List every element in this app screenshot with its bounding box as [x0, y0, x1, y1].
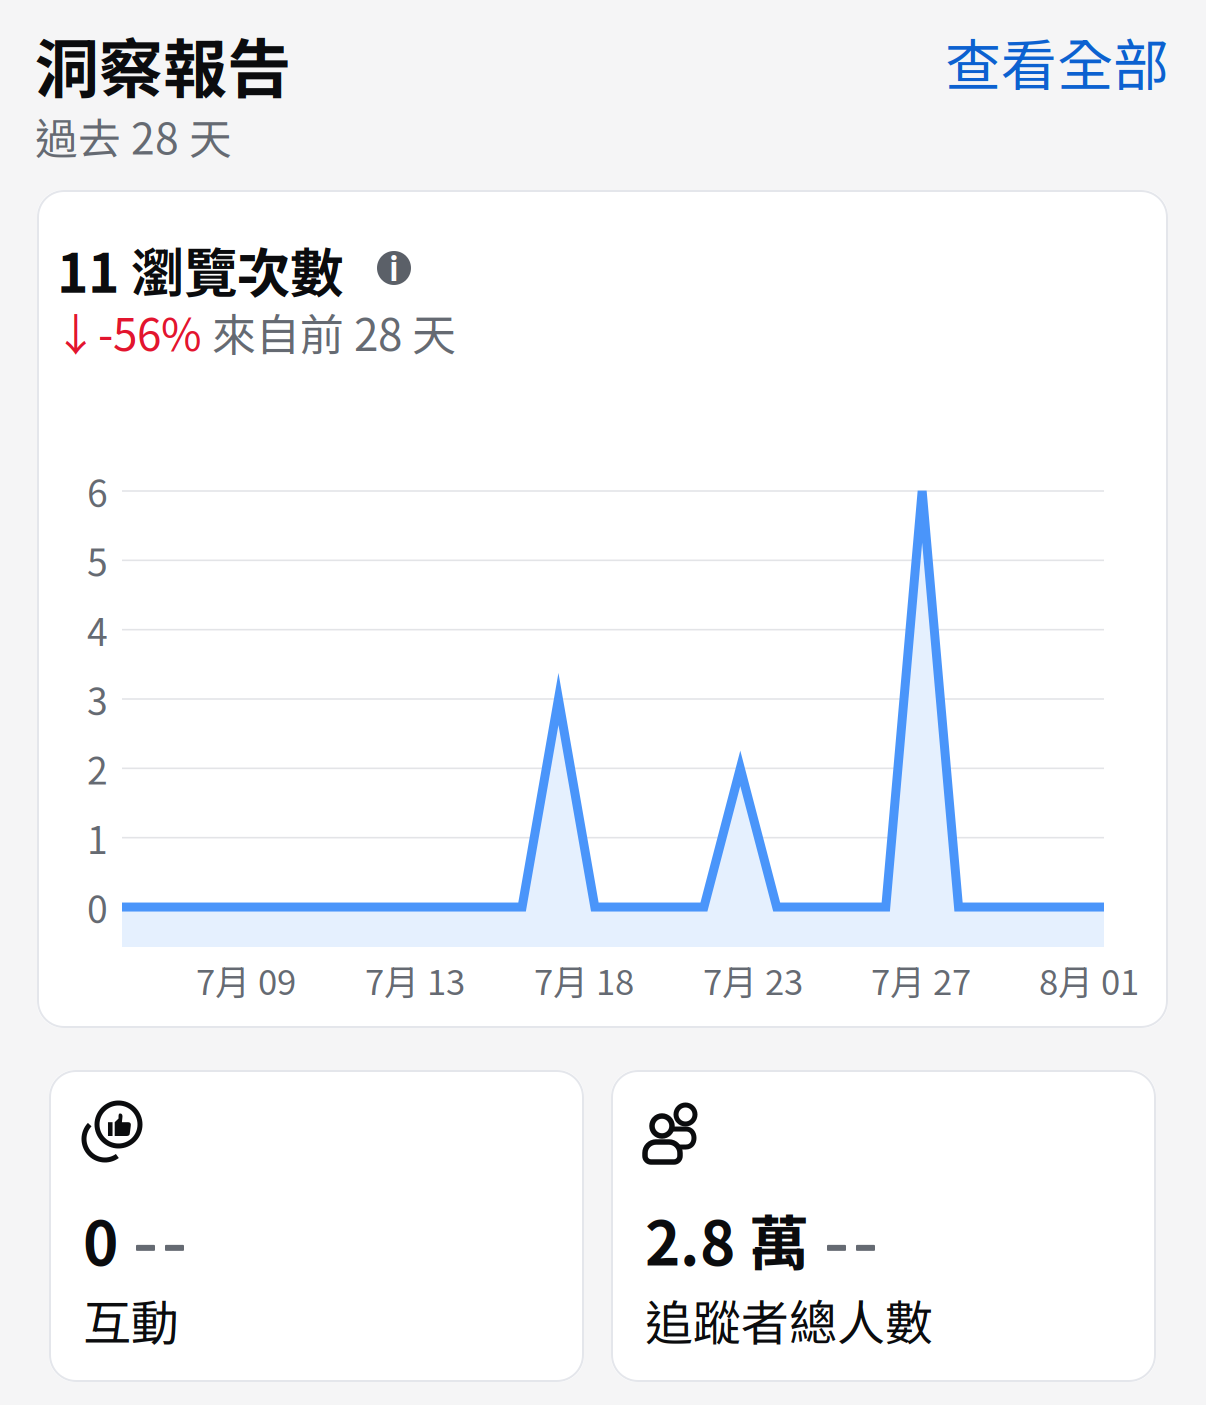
- staticText: 來自前 28 天: [202, 300, 456, 364]
- staticText: 互動: [83, 1285, 179, 1354]
- staticText: 8月 01: [1039, 955, 1139, 1005]
- staticText: 追蹤者總人數: [645, 1285, 933, 1354]
- button[interactable]: 關於瀏覽次數: [377, 251, 411, 285]
- staticText: 查看全部: [945, 21, 1169, 102]
- staticText: 1: [87, 811, 108, 865]
- staticText: 7月 13: [365, 955, 465, 1005]
- staticText: 7月 09: [196, 955, 296, 1005]
- staticText: 0: [83, 1196, 118, 1283]
- button[interactable]: 0: [49, 1070, 584, 1382]
- staticText: i: [389, 244, 399, 290]
- staticText: 7月 18: [534, 955, 634, 1005]
- staticText: ↓-56%: [54, 300, 202, 364]
- staticText: 6: [87, 464, 108, 518]
- staticText: 7月 27: [871, 955, 971, 1005]
- staticText: 過去 28 天: [35, 105, 232, 167]
- staticText: 11 瀏覽次數: [57, 231, 343, 308]
- button[interactable]: 2.8 萬: [611, 1070, 1156, 1382]
- staticText: 7月 23: [703, 955, 803, 1005]
- staticText: 4: [87, 603, 108, 657]
- staticText: 2: [87, 741, 108, 795]
- staticText: 2.8 萬: [645, 1196, 809, 1283]
- button[interactable]: 查看全部: [935, 11, 1179, 112]
- staticText: 3: [87, 672, 108, 726]
- staticText: 洞察報告: [35, 18, 291, 111]
- staticText: 5: [87, 533, 108, 587]
- staticText: 0: [87, 880, 108, 934]
